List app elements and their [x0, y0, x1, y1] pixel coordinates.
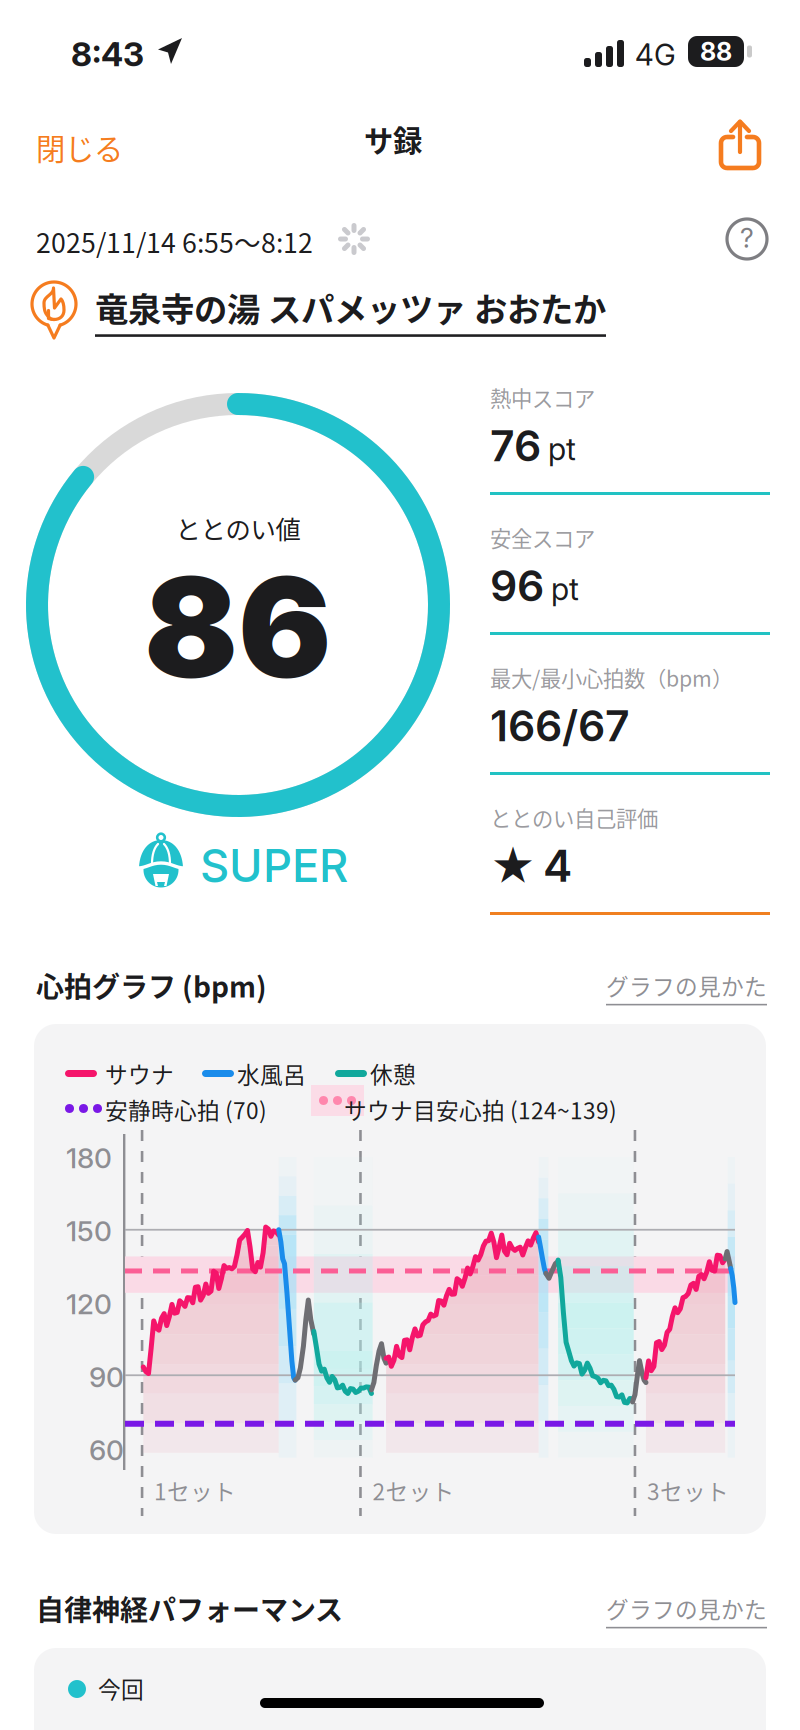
staticText: グラフの見かた: [606, 969, 767, 1002]
button[interactable]: グラフの見かた: [606, 1592, 767, 1628]
staticText: 2セット: [372, 1474, 454, 1507]
staticText: 最大/最小心拍数（bpm）: [490, 662, 733, 693]
staticText: 96: [490, 560, 544, 612]
staticText: pt: [551, 570, 579, 608]
staticText: pt: [548, 430, 576, 468]
staticText: 安全スコア: [490, 522, 595, 553]
staticText: サウナ目安心拍 (124~139): [344, 1093, 617, 1126]
staticText: 安静時心拍 (70): [105, 1093, 267, 1126]
staticText: 8:43: [71, 34, 144, 74]
button[interactable]: グラフの見かた: [606, 969, 767, 1005]
staticText: 水風呂: [237, 1057, 306, 1090]
staticText: 90: [89, 1360, 124, 1394]
staticText: サウナ: [105, 1057, 174, 1090]
staticText: ととのい自己評価: [490, 802, 658, 833]
staticText: SUPER: [200, 838, 348, 893]
staticText: 4G: [635, 37, 676, 72]
staticText: グラフの見かた: [606, 1592, 767, 1625]
staticText: ととのい値: [175, 510, 300, 546]
staticText: 心拍グラフ (bpm): [36, 965, 267, 1005]
staticText: 竜泉寺の湯 スパメッツァ おおたか: [95, 283, 606, 331]
staticText: サ録: [364, 118, 422, 160]
staticText: 86: [144, 543, 332, 711]
staticText: 閉じる: [36, 126, 123, 168]
button[interactable]: 竜泉寺の湯 スパメッツァ おおたか: [30, 280, 630, 340]
button[interactable]: 閉じる: [28, 114, 131, 180]
staticText: 166/67: [490, 700, 630, 752]
staticText: 88: [700, 36, 732, 67]
staticText: ?: [740, 222, 754, 254]
staticText: 4: [543, 839, 572, 892]
staticText: 150: [66, 1214, 112, 1248]
staticText: 3セット: [647, 1474, 729, 1507]
button[interactable]: Help: [725, 217, 769, 261]
staticText: 60: [89, 1433, 124, 1467]
staticText: ★: [490, 840, 536, 893]
staticText: 76: [490, 420, 541, 472]
staticText: 2025/11/14 6:55〜8:12: [36, 222, 313, 261]
staticText: 180: [66, 1141, 112, 1175]
staticText: 自律神経パフォーマンス: [36, 1588, 343, 1628]
staticText: 120: [66, 1287, 112, 1321]
button[interactable]: Share: [710, 110, 770, 178]
staticText: 休憩: [370, 1057, 416, 1090]
staticText: 熱中スコア: [490, 382, 595, 413]
staticText: 1セット: [154, 1474, 236, 1507]
staticText: 今回: [98, 1672, 144, 1705]
